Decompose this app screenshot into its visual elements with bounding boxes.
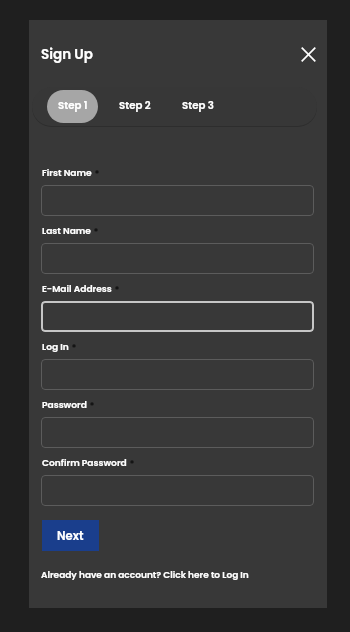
staticText: Step 3	[182, 101, 214, 112]
button[interactable]: Next	[42, 520, 99, 551]
button[interactable]: Step 2	[112, 94, 158, 118]
staticText: Confirm Password	[42, 459, 127, 469]
staticText: Sign Up	[41, 48, 93, 63]
button[interactable]	[41, 243, 314, 274]
button[interactable]: Already have an account? Click here to L…	[41, 571, 249, 581]
staticText: Step 1	[58, 101, 88, 112]
button[interactable]	[41, 475, 314, 506]
button[interactable]: Close	[296, 42, 320, 66]
staticText: Next	[57, 531, 84, 544]
button[interactable]: Step 1	[47, 90, 98, 123]
staticText: Already have an account? Click here to L…	[41, 571, 249, 581]
staticText: Log In	[42, 343, 69, 353]
button[interactable]	[41, 359, 314, 390]
button[interactable]	[41, 417, 314, 448]
button[interactable]	[41, 185, 314, 216]
staticText: E-Mail Address	[42, 285, 112, 295]
button[interactable]	[41, 301, 314, 332]
staticText: Password	[42, 401, 87, 411]
staticText: Last Name	[42, 227, 91, 237]
staticText: Step 2	[119, 101, 151, 112]
button[interactable]: Step 3	[175, 94, 221, 118]
staticText: First Name	[42, 169, 92, 179]
